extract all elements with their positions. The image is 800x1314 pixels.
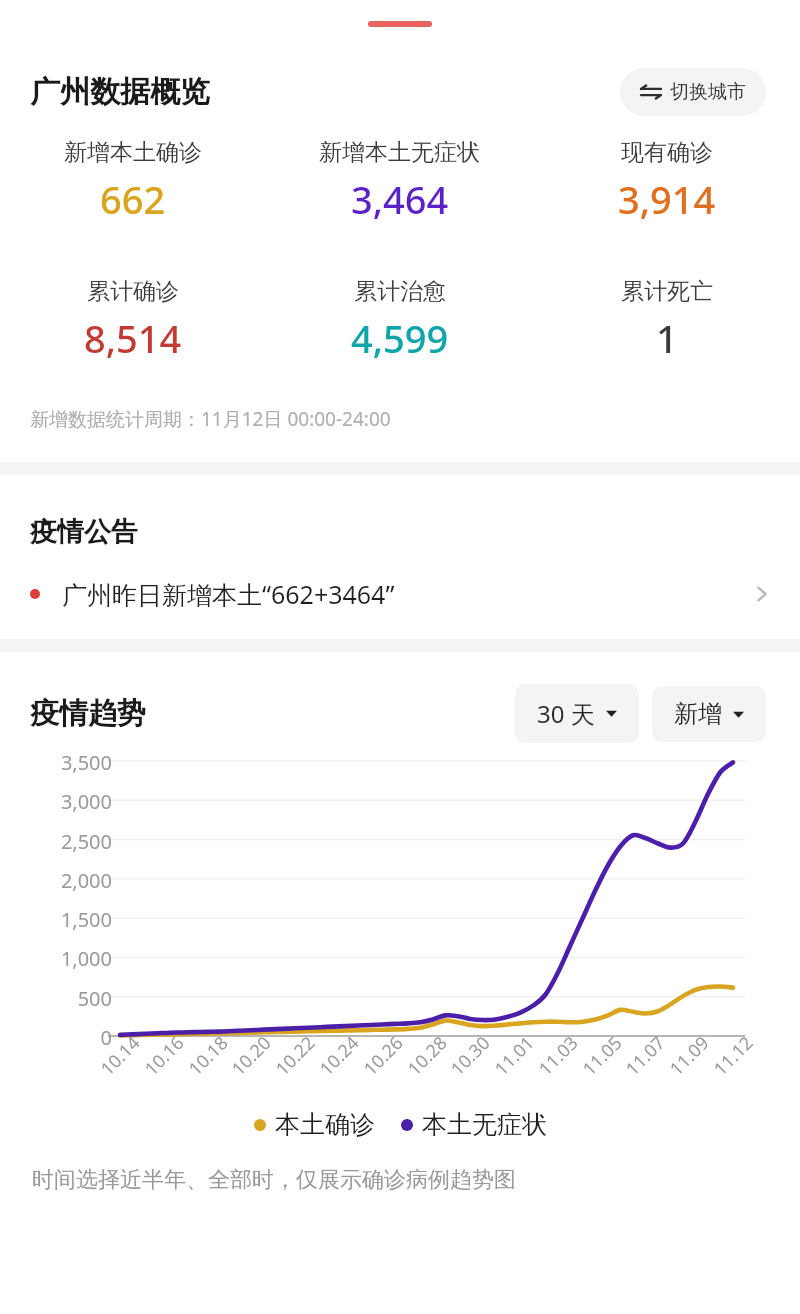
staticText: 2,000 xyxy=(60,867,112,894)
staticText: 新增数据统计周期：11月12日 00:00-24:00 xyxy=(30,406,391,432)
staticText: 10.16 xyxy=(139,1030,190,1081)
other: 展开 xyxy=(752,584,772,604)
staticText: 11.12 xyxy=(708,1030,759,1081)
staticText: 切换城市 xyxy=(670,80,746,104)
button[interactable]: 30 天 xyxy=(515,684,639,743)
staticText: 3,000 xyxy=(60,788,112,815)
staticText: 500 xyxy=(77,985,112,1012)
staticText: 3,500 xyxy=(60,749,112,776)
staticText: 662 xyxy=(100,173,166,225)
staticText: 现有确诊 xyxy=(621,138,713,167)
staticText: 10.20 xyxy=(226,1030,277,1081)
staticText: 11.05 xyxy=(577,1030,628,1081)
staticText: 10.24 xyxy=(314,1030,365,1081)
staticText: 1 xyxy=(656,312,678,364)
staticText: 11.09 xyxy=(664,1030,715,1081)
staticText: 3,464 xyxy=(351,173,449,225)
staticText: 新增本土确诊 xyxy=(64,138,202,167)
staticText: 新增 xyxy=(674,699,722,729)
staticText: 时间选择近半年、全部时，仅展示确诊病例趋势图 xyxy=(32,1166,516,1194)
staticText: 疫情趋势 xyxy=(30,695,146,732)
staticText: 新增本土无症状 xyxy=(319,138,480,167)
staticText: 10.30 xyxy=(445,1030,496,1081)
staticText: 疫情公告 xyxy=(30,515,138,549)
button[interactable]: 新增 xyxy=(652,686,766,742)
staticText: 10.28 xyxy=(402,1030,453,1081)
staticText: 广州数据概览 xyxy=(30,73,210,111)
staticText: 累计确诊 xyxy=(87,277,179,306)
staticText: 11.03 xyxy=(533,1030,584,1081)
staticText: 2,500 xyxy=(60,828,112,855)
staticText: 本土无症状 xyxy=(422,1109,547,1140)
staticText: 1,500 xyxy=(60,906,112,933)
staticText: 10.14 xyxy=(95,1030,146,1081)
staticText: 本土确诊 xyxy=(275,1109,375,1140)
staticText: 11.07 xyxy=(620,1030,671,1081)
staticText: 10.18 xyxy=(183,1030,234,1081)
staticText: 累计治愈 xyxy=(354,277,446,306)
staticText: 广州昨日新增本土“662+3464” xyxy=(62,577,395,611)
button[interactable]: 广州昨日新增本土“662+3464” xyxy=(0,549,800,639)
staticText: 3,914 xyxy=(618,173,716,225)
staticText: 1,000 xyxy=(60,945,112,972)
staticText: 4,599 xyxy=(351,312,449,364)
staticText: 11.01 xyxy=(489,1030,540,1081)
button[interactable]: 切换城市 xyxy=(620,68,766,116)
staticText: 30 天 xyxy=(537,697,595,730)
staticText: 0 xyxy=(100,1024,112,1051)
staticText: 10.26 xyxy=(358,1030,409,1081)
staticText: 8,514 xyxy=(84,312,182,364)
staticText: 10.22 xyxy=(270,1030,321,1081)
staticText: 累计死亡 xyxy=(621,277,713,306)
